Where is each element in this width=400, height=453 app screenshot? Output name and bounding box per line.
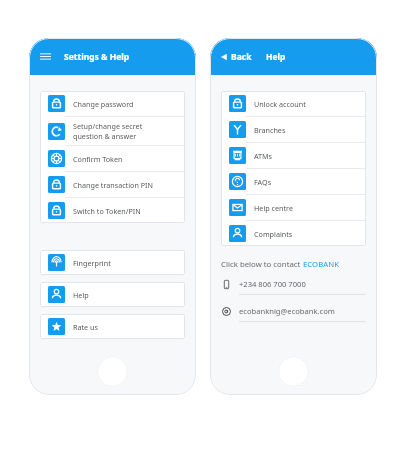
button[interactable]: Fingerprint [40, 250, 185, 275]
staticText: Settings & Help [64, 51, 130, 63]
staticText: Fingerprint [73, 258, 111, 268]
button[interactable]: Menu [40, 51, 51, 62]
staticText: Help [73, 290, 89, 300]
button[interactable]: Unlock account [221, 91, 366, 116]
button[interactable]: Branches [221, 117, 366, 142]
staticText: Confirm Token [73, 154, 123, 164]
staticText: Unlock account [254, 99, 306, 109]
button[interactable]: Complaints [221, 221, 366, 246]
staticText: Branches [254, 125, 286, 135]
staticText: Change transaction PIN [73, 180, 153, 190]
button[interactable]: Home [97, 356, 128, 387]
staticText: Back [231, 51, 252, 63]
button[interactable]: ecobanknig@ecobank.com [221, 301, 366, 322]
staticText: Click below to contact [221, 259, 303, 270]
button[interactable]: Change transaction PIN [40, 172, 185, 197]
button[interactable]: Switch to Token/PIN [40, 198, 185, 223]
button[interactable]: Help [40, 282, 185, 307]
button[interactable]: +234 806 700 7000 [221, 274, 366, 295]
staticText: Rate us [73, 322, 98, 332]
staticText: ecobanknig@ecobank.com [239, 306, 335, 316]
button[interactable]: FAQs [221, 169, 366, 194]
button[interactable]: Setup/change secret question & answer [40, 117, 185, 145]
staticText: Complaints [254, 229, 293, 239]
staticText: ECOBANK [303, 259, 339, 270]
staticText: Help centre [254, 203, 293, 213]
button[interactable]: Back [220, 51, 252, 63]
staticText: Setup/change secret question & answer [73, 121, 143, 141]
button[interactable]: Confirm Token [40, 146, 185, 171]
staticText: Switch to Token/PIN [73, 206, 141, 216]
staticText: +234 806 700 7000 [239, 279, 306, 289]
staticText: Change password [73, 99, 134, 109]
button[interactable]: Home [278, 356, 309, 387]
staticText: Help [266, 51, 286, 63]
button[interactable]: ATMs [221, 143, 366, 168]
staticText: FAQs [254, 177, 272, 187]
button[interactable]: Rate us [40, 314, 185, 339]
button[interactable]: Change password [40, 91, 185, 116]
staticText: ATMs [254, 151, 273, 161]
button[interactable]: Help centre [221, 195, 366, 220]
